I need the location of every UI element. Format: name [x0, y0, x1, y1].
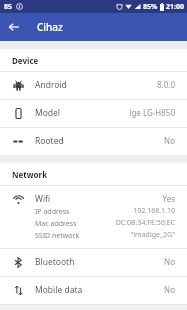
staticText: 192.168.1.10 — [133, 206, 175, 216]
button[interactable]: Back — [0, 13, 28, 41]
button[interactable]: Bluetooth status — [0, 249, 187, 276]
staticText: Yes — [162, 193, 175, 204]
staticText: Mac address — [35, 219, 77, 229]
button[interactable]: Device model — [0, 100, 187, 127]
button[interactable]: Wifi details — [0, 186, 187, 248]
staticText: 85% — [143, 2, 158, 12]
staticText: No — [164, 284, 175, 295]
staticText: IP address — [35, 207, 70, 217]
staticText: Android — [35, 79, 67, 91]
staticText: 8.0.0 — [156, 79, 175, 90]
staticText: Model — [35, 107, 61, 119]
staticText: Cihaz — [37, 20, 63, 34]
button[interactable]: Android version — [0, 72, 187, 99]
staticText: DC:0B:34:FE:50:EC — [115, 218, 175, 228]
staticText: No — [164, 135, 175, 146]
button[interactable]: Mobile data status — [0, 277, 187, 304]
staticText: Wifi — [35, 193, 51, 205]
staticText: 85 — [4, 2, 13, 12]
staticText: Mobile data — [35, 284, 83, 296]
staticText: SSID network — [35, 231, 80, 241]
button[interactable]: Root status — [0, 128, 187, 155]
staticText: Rooted — [35, 135, 64, 147]
staticText: Bluetooth — [35, 256, 75, 268]
staticText: 21:00 — [166, 2, 184, 12]
staticText: lge LG-H850 — [129, 107, 175, 118]
staticText: "imadige_2G" — [130, 230, 175, 240]
staticText: Network — [12, 169, 48, 180]
staticText: Device — [12, 55, 39, 66]
staticText: No — [164, 256, 175, 267]
